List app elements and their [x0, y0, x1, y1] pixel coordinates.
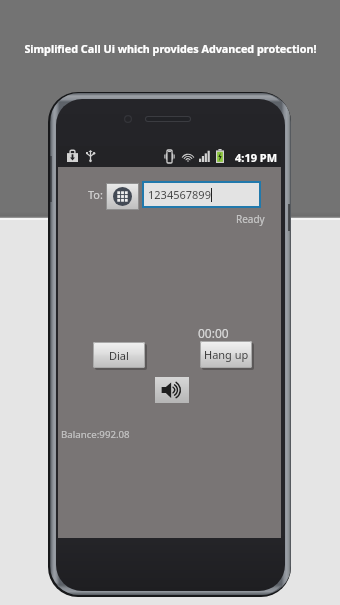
staticText: To:	[88, 187, 103, 202]
button[interactable]: Dialpad	[106, 183, 139, 210]
button[interactable]: Hang up	[201, 342, 253, 369]
button[interactable]: 1234567899	[144, 183, 259, 206]
button[interactable]: Dial	[94, 343, 146, 369]
staticText: Balance:992.08	[61, 428, 130, 441]
staticText: Dial	[109, 348, 129, 363]
staticText: Ready	[236, 212, 265, 226]
staticText: 1234567899	[148, 187, 211, 202]
staticText: Simplified Call Ui which provides Advanc…	[24, 41, 317, 56]
staticText: 00:00	[198, 325, 229, 341]
staticText: Hang up	[204, 347, 249, 362]
button[interactable]: Speaker	[155, 377, 189, 403]
staticText: 4:19 PM	[235, 150, 278, 165]
